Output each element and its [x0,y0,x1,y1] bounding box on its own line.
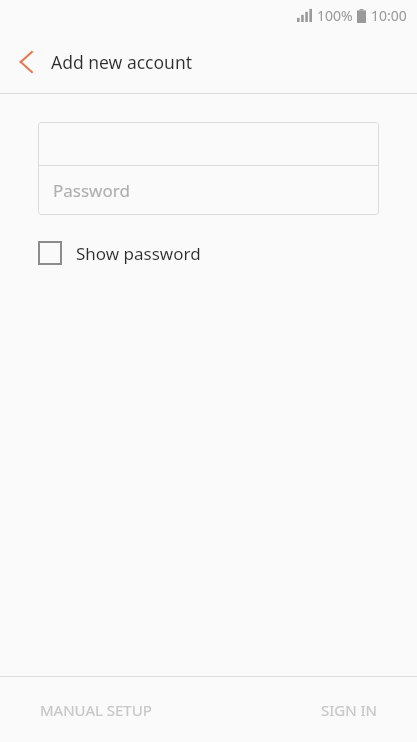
staticText: Password [53,179,130,202]
staticText: 100% [317,6,353,25]
button[interactable] [38,122,379,165]
staticText: 10:00 [371,6,407,25]
staticText: MANUAL SETUP [40,700,152,720]
button[interactable]: Password [38,166,379,215]
button[interactable]: MANUAL SETUP [22,688,170,732]
button[interactable]: Show password [38,238,201,268]
button[interactable]: Back [8,44,44,80]
staticText: Add new account [51,50,193,74]
staticText: SIGN IN [320,700,377,720]
staticText: Show password [76,242,201,265]
button[interactable]: SIGN IN [302,688,395,732]
